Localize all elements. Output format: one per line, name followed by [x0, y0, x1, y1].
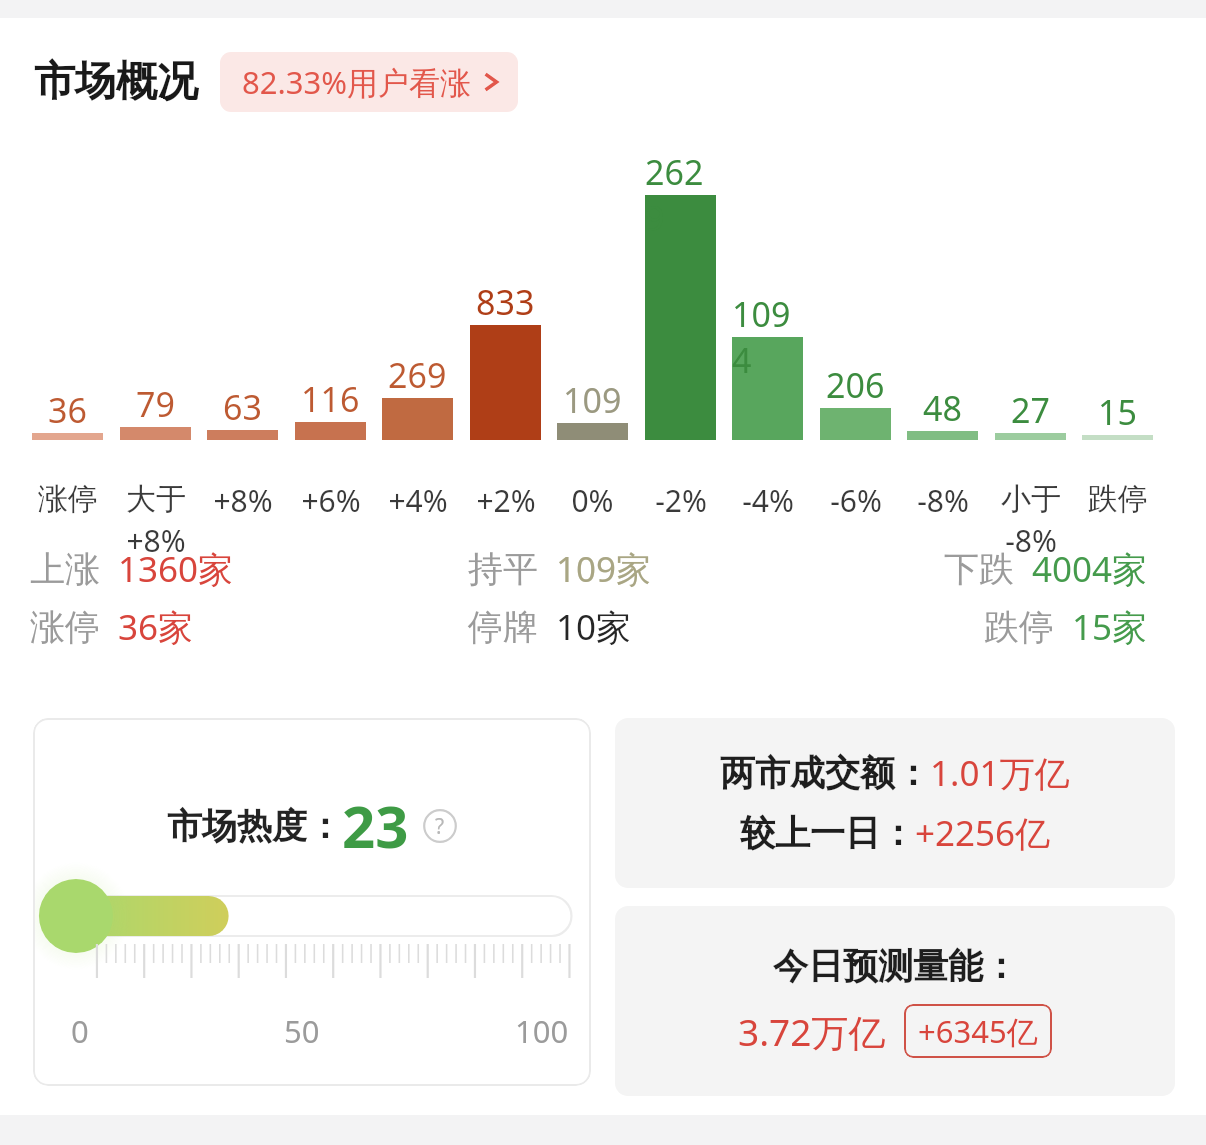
staticText: 1360家	[118, 545, 234, 593]
staticText: 15	[1098, 389, 1137, 435]
button[interactable]: 两市成交额：	[615, 718, 1175, 888]
staticText: -8%	[917, 480, 969, 521]
staticText: +8%	[213, 480, 273, 521]
staticText: 市场热度：	[167, 804, 342, 848]
staticText: -8%	[1005, 520, 1057, 561]
staticText: 4004家	[1032, 545, 1148, 593]
staticText: 10家	[556, 603, 632, 651]
staticText: +4%	[388, 480, 448, 521]
staticText: 116	[301, 376, 360, 422]
staticText: 市场概况	[34, 56, 198, 108]
staticText: 跌停	[1088, 480, 1148, 518]
staticText: 大于	[126, 480, 186, 518]
staticText: 小于	[1001, 480, 1061, 518]
staticText: 跌停	[984, 605, 1054, 649]
staticText: 63	[223, 384, 262, 430]
staticText: 100	[515, 1010, 569, 1052]
staticText: -2%	[655, 480, 707, 521]
staticText: 涨停	[30, 605, 100, 649]
staticText: ?	[435, 812, 445, 841]
staticText: 1094	[732, 291, 803, 383]
staticText: 15家	[1072, 603, 1148, 651]
staticText: 2629	[645, 149, 716, 241]
staticText: 36	[48, 387, 87, 433]
button[interactable]: 今日预测量能：	[615, 906, 1175, 1096]
staticText: 109	[563, 377, 622, 423]
staticText: 下跌	[944, 547, 1014, 591]
staticText: 两市成交额：	[720, 751, 930, 795]
staticText: 较上一日：	[740, 811, 915, 855]
staticText: 27	[1011, 387, 1050, 433]
staticText: 0%	[571, 480, 614, 521]
staticText: 79	[136, 381, 175, 427]
button[interactable]: 热度说明	[423, 809, 457, 843]
staticText: +6%	[301, 480, 361, 521]
staticText: 50	[284, 1010, 320, 1052]
staticText: 206	[826, 362, 885, 408]
staticText: 上涨	[30, 547, 100, 591]
staticText: 持平	[468, 547, 538, 591]
staticText: 833	[476, 279, 535, 325]
staticText: 36家	[118, 603, 194, 651]
staticText: 0	[71, 1010, 89, 1052]
button[interactable]: 82.33%用户看涨	[220, 52, 518, 112]
staticText: 269	[388, 352, 447, 398]
staticText: +2256亿	[915, 809, 1051, 857]
staticText: 3.72万亿	[738, 1006, 886, 1057]
staticText: -4%	[742, 480, 794, 521]
staticText: 82.33%用户看涨	[242, 61, 471, 103]
staticText: 今日预测量能：	[773, 944, 1018, 988]
staticText: 1.01万亿	[930, 749, 1070, 797]
staticText: +6345亿	[918, 1010, 1038, 1052]
staticText: +2%	[476, 480, 536, 521]
staticText: +8%	[126, 520, 186, 561]
staticText: 23	[342, 786, 409, 865]
staticText: -6%	[830, 480, 882, 521]
staticText: 109家	[556, 545, 652, 593]
staticText: 48	[923, 385, 962, 431]
button[interactable]: 市场热度：	[33, 718, 591, 1086]
staticText: 涨停	[38, 480, 98, 518]
staticText: 停牌	[468, 605, 538, 649]
